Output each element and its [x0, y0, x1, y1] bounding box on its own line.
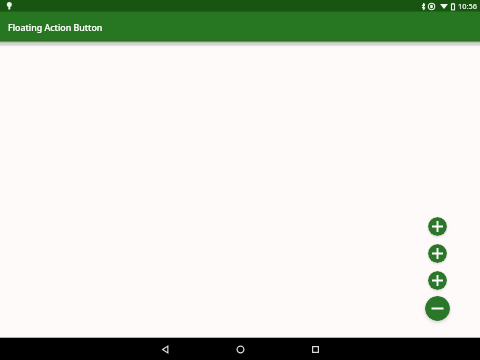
button[interactable]: Add — [428, 244, 447, 263]
button[interactable]: Home — [203, 338, 278, 360]
button[interactable]: Add — [428, 217, 447, 236]
staticText: Floating Action Button — [8, 22, 103, 34]
button[interactable]: Close actions — [425, 296, 450, 321]
staticText: 10:56 — [458, 1, 477, 11]
button[interactable]: Add — [428, 271, 447, 290]
button[interactable]: Back — [128, 338, 203, 360]
button[interactable]: Recent apps — [278, 338, 353, 360]
